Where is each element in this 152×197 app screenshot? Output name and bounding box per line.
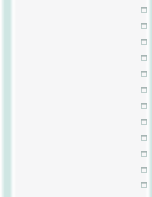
button[interactable]: Open item 6	[141, 87, 147, 93]
button[interactable]: Open item 4	[141, 55, 147, 61]
button[interactable]: Open item 3	[141, 39, 147, 45]
button[interactable]: Open item 1	[141, 7, 147, 13]
button[interactable]: Open item 12	[141, 182, 147, 188]
button[interactable]: Open item 9	[141, 135, 147, 141]
button[interactable]: Open item 5	[141, 71, 147, 77]
button[interactable]: Open item 7	[141, 103, 147, 109]
button[interactable]: Open item 8	[141, 119, 147, 125]
button[interactable]: Open item 2	[141, 23, 147, 29]
button[interactable]: Open item 11	[141, 167, 147, 173]
button[interactable]: Open item 10	[141, 151, 147, 157]
